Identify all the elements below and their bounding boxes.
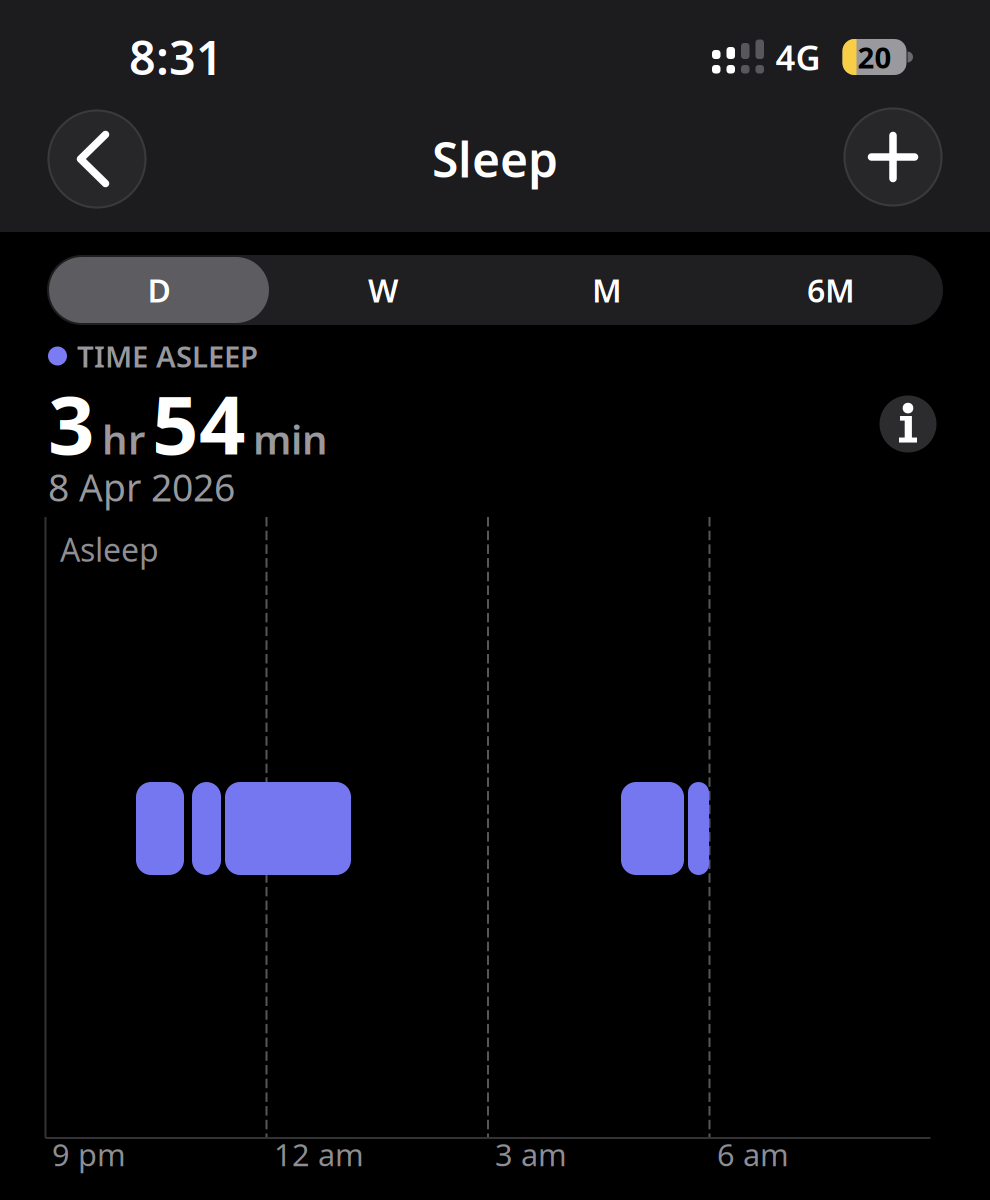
staticText: Asleep <box>60 528 159 570</box>
staticText: 4G <box>775 34 820 80</box>
button[interactable]: M <box>495 255 719 325</box>
staticText: W <box>368 269 398 311</box>
staticText: 12 am <box>274 1134 364 1175</box>
staticText: 6 am <box>717 1134 789 1175</box>
button[interactable]: D <box>49 257 269 323</box>
button[interactable]: Back <box>47 109 146 208</box>
staticText: D <box>147 269 170 311</box>
staticText: 3 <box>48 369 95 477</box>
staticText: 3 am <box>495 1134 567 1175</box>
staticText: 9 pm <box>52 1134 126 1175</box>
button[interactable]: Add Data <box>843 107 942 206</box>
staticText: 8:31 <box>129 26 223 88</box>
staticText: 20 <box>857 37 891 76</box>
staticText: min <box>253 412 328 466</box>
button[interactable]: W <box>271 255 495 325</box>
staticText: 6M <box>807 269 855 311</box>
staticText: 8 Apr 2026 <box>48 462 235 512</box>
staticText: TIME ASLEEP <box>77 336 258 375</box>
staticText: 54 <box>152 369 246 477</box>
button[interactable]: Info <box>879 395 936 452</box>
staticText: Sleep <box>432 127 558 191</box>
button[interactable]: 6M <box>719 255 943 325</box>
staticText: M <box>592 269 622 311</box>
staticText: hr <box>102 412 145 466</box>
